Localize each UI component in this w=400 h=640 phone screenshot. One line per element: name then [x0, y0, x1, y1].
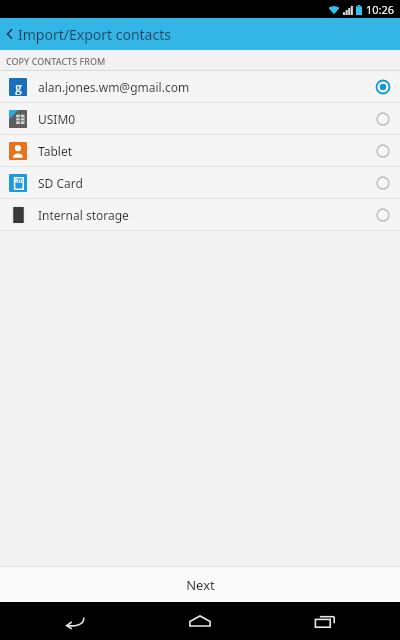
- staticText: Tablet: [38, 143, 376, 159]
- staticText: Import/Export contacts: [18, 25, 171, 44]
- staticText: Internal storage: [38, 207, 376, 223]
- staticText: Next: [186, 576, 215, 594]
- staticText: SD Card: [38, 175, 376, 191]
- button[interactable]: Import/Export contacts: [0, 18, 400, 50]
- staticText: alan.jones.wm@gmail.com: [38, 79, 376, 95]
- button[interactable]: Next: [0, 567, 400, 602]
- button[interactable]: Back: [25, 602, 125, 640]
- staticText: COPY CONTACTS FROM: [6, 55, 106, 67]
- button[interactable]: USIM0: [0, 103, 400, 134]
- button[interactable]: Recent apps: [275, 602, 375, 640]
- staticText: USIM0: [38, 111, 376, 127]
- button[interactable]: SD Card: [0, 167, 400, 198]
- button[interactable]: Home: [150, 602, 250, 640]
- button[interactable]: Internal storage: [0, 199, 400, 230]
- staticText: g: [15, 78, 22, 96]
- button[interactable]: g: [0, 71, 400, 102]
- button[interactable]: Tablet: [0, 135, 400, 166]
- staticText: 10:26: [366, 2, 395, 17]
